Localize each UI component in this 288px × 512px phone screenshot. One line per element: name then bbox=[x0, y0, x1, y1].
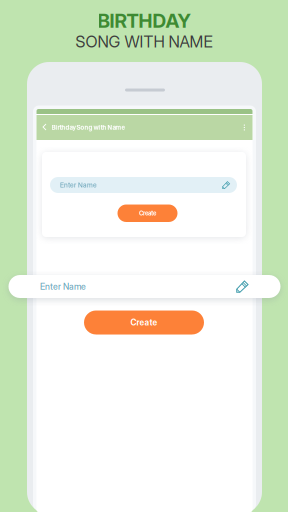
button[interactable]: Create bbox=[117, 204, 177, 222]
staticText: Enter Name bbox=[60, 181, 97, 189]
staticText: Create bbox=[130, 317, 157, 327]
staticText: BIRTHDAY bbox=[97, 9, 190, 32]
staticText: SONG WITH NAME bbox=[75, 32, 212, 51]
staticText: Create bbox=[139, 210, 156, 217]
staticText: Enter Name bbox=[40, 281, 86, 292]
staticText: Birthday Song with Name bbox=[51, 124, 125, 131]
button[interactable]: Birthday Song with Name bbox=[36, 115, 252, 140]
button[interactable]: Create bbox=[84, 310, 204, 334]
button[interactable]: Enter Name bbox=[8, 275, 280, 298]
button[interactable]: Enter Name bbox=[50, 177, 237, 193]
